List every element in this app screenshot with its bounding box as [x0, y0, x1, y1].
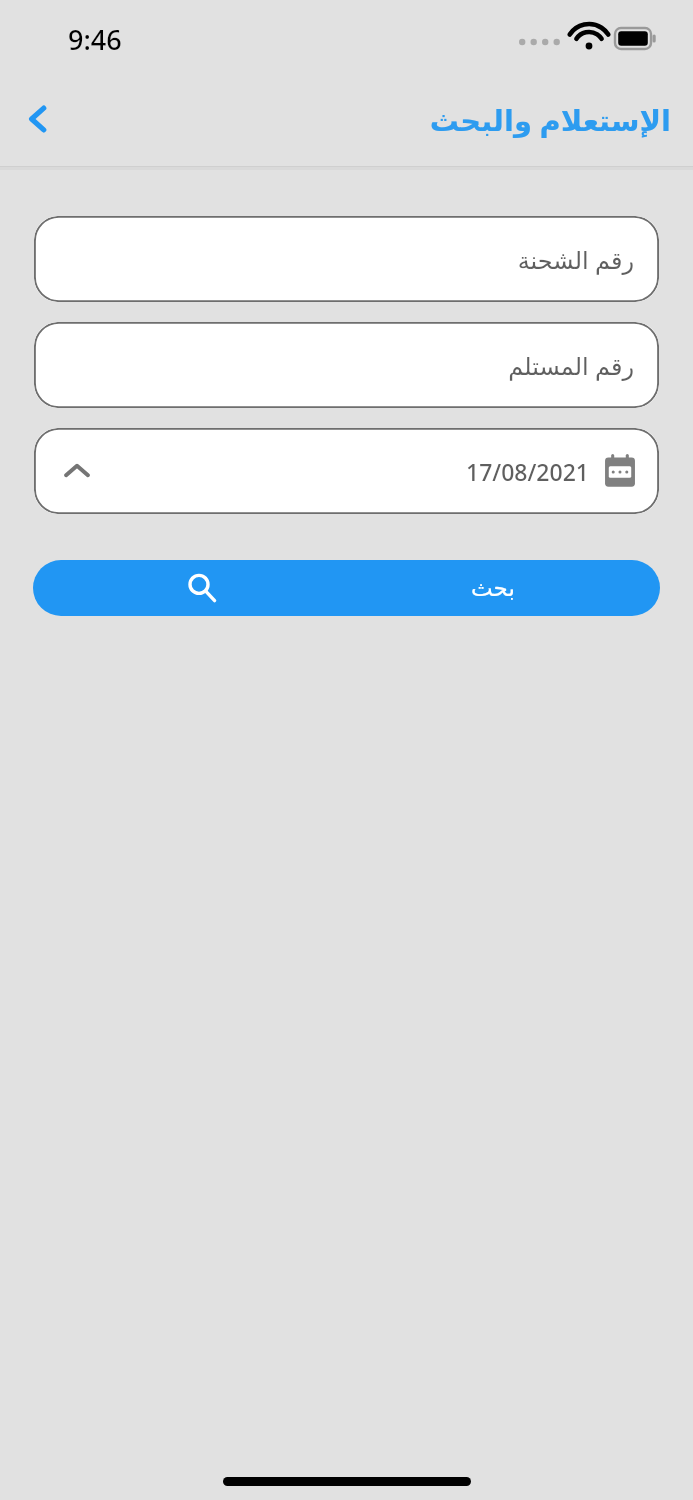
- staticText: 9:46: [68, 21, 122, 58]
- button[interactable]: بحث: [33, 560, 660, 616]
- other: Calendar: [603, 454, 637, 488]
- button[interactable]: Collapse: [60, 454, 94, 488]
- staticText: الإستعلام والبحث: [429, 100, 671, 139]
- staticText: رقم المستلم: [508, 349, 634, 382]
- staticText: 17/08/2021: [466, 456, 589, 487]
- button[interactable]: Back: [10, 91, 66, 147]
- button[interactable]: Calendar: [34, 428, 659, 514]
- other: Search: [185, 571, 219, 605]
- button[interactable]: رقم المستلم: [34, 322, 659, 408]
- staticText: بحث: [471, 575, 515, 602]
- staticText: رقم الشحنة: [517, 243, 634, 276]
- button[interactable]: رقم الشحنة: [34, 216, 659, 302]
